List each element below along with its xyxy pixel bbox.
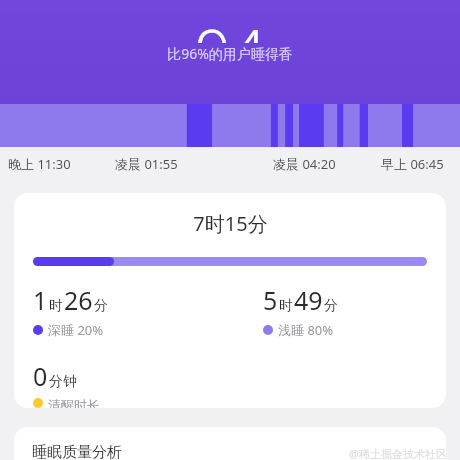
staticText: 时 (279, 297, 293, 315)
staticText: 比96%的用户睡得香 (167, 44, 293, 63)
button[interactable]: 7时15分 (14, 193, 446, 408)
staticText: 浅睡 80% (278, 321, 334, 339)
staticText: 早上 06:45 (381, 155, 444, 173)
staticText: 凌晨 01:55 (115, 155, 178, 173)
staticText: 94 (195, 9, 266, 43)
staticText: 1 (33, 283, 48, 317)
staticText: 分 (94, 297, 108, 315)
staticText: 5 (263, 283, 278, 317)
staticText: 晚上 11:30 (8, 155, 71, 173)
staticText: 睡眠质量分析 (32, 443, 122, 460)
staticText: 分钟 (49, 373, 77, 391)
staticText: 深睡 20% (48, 321, 104, 339)
staticText: 7时15分 (193, 210, 268, 237)
staticText: 分 (324, 297, 338, 315)
staticText: 0 (33, 359, 48, 393)
staticText: 时 (49, 297, 63, 315)
staticText: @稀土掘金技术社区 (349, 446, 446, 460)
button[interactable]: 睡眠质量分析 (14, 427, 446, 460)
staticText: 49 (294, 283, 323, 317)
staticText: 清醒时长 (48, 397, 100, 408)
staticText: 26 (64, 283, 93, 317)
staticText: 凌晨 04:20 (273, 155, 336, 173)
